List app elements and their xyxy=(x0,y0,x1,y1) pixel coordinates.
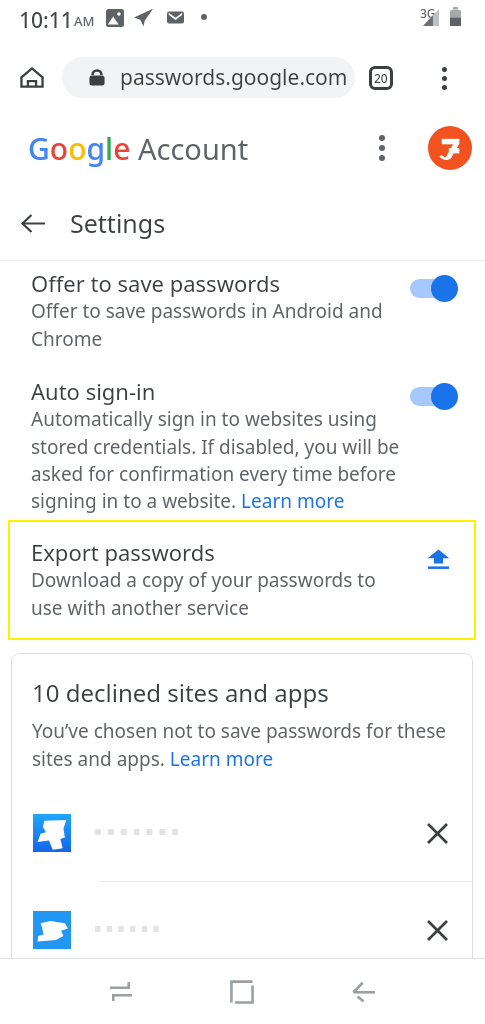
staticText: You’ve chosen not to save passwords for … xyxy=(32,718,455,771)
staticText: AM xyxy=(74,12,95,30)
button[interactable]: More options xyxy=(422,56,466,100)
button[interactable]: Back xyxy=(342,959,386,1024)
button[interactable]: Account avatar xyxy=(428,126,472,170)
button[interactable]: Back xyxy=(11,201,55,245)
staticText: Offer to save passwords in Android and C… xyxy=(31,298,402,351)
button[interactable]: passwords.google.com xyxy=(62,57,355,98)
button[interactable]: Export passwords xyxy=(416,537,460,581)
button[interactable]: Toggle xyxy=(407,379,481,413)
staticText: Download a copy of your passwords to use… xyxy=(31,567,404,620)
button[interactable]: Offer to save passwords xyxy=(0,262,485,358)
button[interactable]: Remove site xyxy=(415,908,459,952)
staticText: Settings xyxy=(70,206,166,240)
staticText: 20 xyxy=(374,70,388,86)
button[interactable]: Tabs xyxy=(359,56,403,100)
staticText: 10 declined sites and apps xyxy=(32,676,329,709)
staticText: Google xyxy=(28,128,131,169)
button[interactable]: Auto sign-in xyxy=(0,358,485,520)
button[interactable]: Remove site xyxy=(11,882,473,958)
staticText: 3G xyxy=(420,5,436,21)
staticText: 10:11 xyxy=(19,6,73,35)
staticText: Offer to save passwords xyxy=(31,268,280,298)
staticText: Account xyxy=(138,129,249,168)
button[interactable]: Remove site xyxy=(415,811,459,855)
button[interactable]: Home xyxy=(10,56,54,100)
staticText: Auto sign-in xyxy=(31,376,156,406)
button[interactable]: Toggle xyxy=(407,271,481,305)
staticText: Automatically sign in to websites using … xyxy=(31,406,402,513)
staticText: passwords.google.com xyxy=(120,63,348,92)
button[interactable]: Export passwords xyxy=(8,520,476,640)
button[interactable]: Home xyxy=(220,959,264,1024)
staticText: Export passwords xyxy=(31,537,215,567)
button[interactable]: Recent apps xyxy=(99,959,143,1024)
button[interactable]: Remove site xyxy=(11,785,473,881)
button[interactable]: More options xyxy=(360,126,404,170)
